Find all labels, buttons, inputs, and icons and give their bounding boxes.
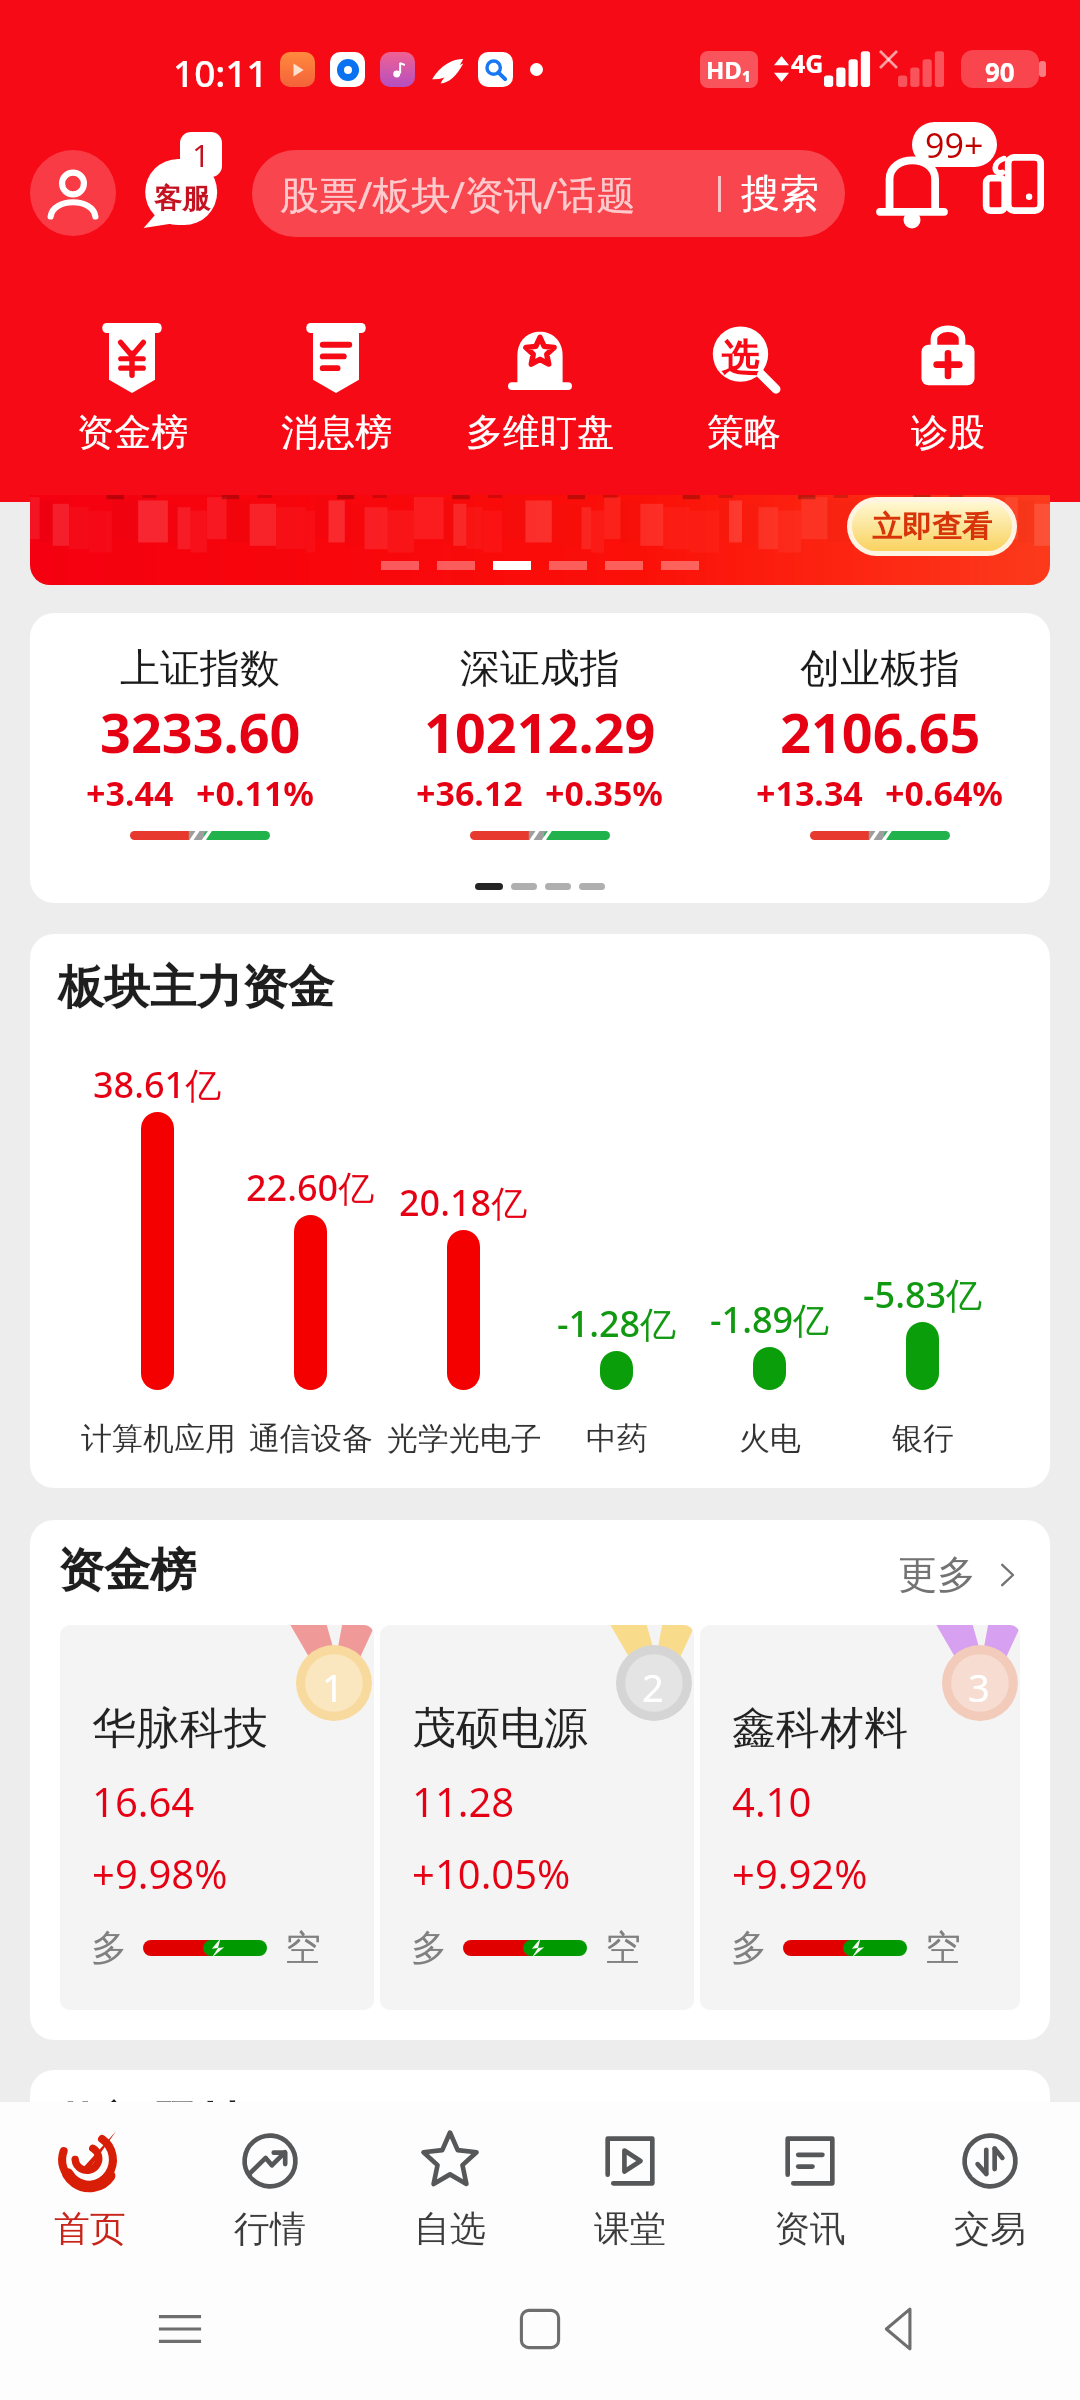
button[interactable]: 行情 [180, 2102, 360, 2257]
button[interactable]: 股票/板块/资讯/话题 [252, 150, 845, 237]
staticText: 空 [925, 1925, 961, 1970]
staticText: 光学光电子 [387, 1419, 540, 1458]
staticText: 客服 [154, 181, 210, 216]
button[interactable]: 选 [642, 319, 846, 456]
staticText: 鑫科材料 [732, 1701, 908, 1756]
staticText: 2106.65 [780, 695, 981, 769]
button[interactable]: 创业板指 [710, 643, 1050, 840]
button[interactable]: App layout [985, 155, 1043, 213]
staticText: 上证指数 [120, 643, 280, 693]
button[interactable]: 资讯 [720, 2102, 900, 2257]
button[interactable]: -1.28亿 [540, 1299, 693, 1390]
staticText: 策略 [707, 409, 781, 456]
button[interactable]: 20.18亿 [387, 1178, 540, 1390]
staticText: 11.28 [412, 1774, 515, 1828]
button[interactable]: 1 [60, 1625, 374, 2010]
staticText: 交易 [954, 2206, 1026, 2251]
staticText: -5.83亿 [863, 1270, 983, 1319]
button[interactable]: Notifications [878, 151, 946, 229]
button[interactable]: 2 [380, 1625, 694, 2010]
staticText: 22.60亿 [246, 1163, 375, 1212]
staticText: 搜索 [741, 169, 819, 218]
staticText: 深证成指 [460, 643, 620, 693]
button[interactable]: Profile [30, 150, 116, 236]
staticText: 3233.60 [100, 695, 301, 769]
staticText: 选 [721, 334, 759, 382]
staticText: +0.35% [545, 770, 664, 816]
staticText: 4.10 [732, 1774, 812, 1828]
button[interactable]: 3 [700, 1625, 1020, 2010]
staticText: 诊股 [911, 409, 985, 456]
staticText: 38.61亿 [93, 1060, 222, 1109]
staticText: 热门题材 [58, 2096, 242, 2154]
staticText: 4G [791, 46, 824, 80]
staticText: 股票/板块/资讯/话题 [280, 167, 636, 220]
staticText: +10.05% [412, 1846, 571, 1900]
button[interactable]: 资金榜 [30, 319, 234, 456]
staticText: 10212.29 [424, 695, 656, 769]
staticText: 行情 [234, 2206, 306, 2251]
button[interactable]: Recents [0, 2257, 360, 2400]
button[interactable]: 22.60亿 [234, 1163, 387, 1390]
staticText: 16.64 [92, 1774, 195, 1828]
button[interactable]: 交易 [900, 2102, 1080, 2257]
staticText: +0.11% [196, 770, 315, 816]
staticText: 资金榜 [77, 409, 188, 456]
staticText: 多 [91, 1925, 127, 1970]
staticText: 创业板指 [800, 643, 960, 693]
staticText: 茂硕电源 [412, 1701, 588, 1756]
button[interactable]: -5.83亿 [846, 1270, 999, 1390]
button[interactable]: 立即查看 [30, 495, 1050, 585]
staticText: 板块主力资金 [58, 959, 334, 1017]
button[interactable]: 消息榜 [234, 319, 438, 456]
button[interactable]: 多维盯盘 [438, 319, 642, 456]
button[interactable]: 更多 [878, 1544, 1022, 1599]
staticText: 计算机应用 [81, 1419, 234, 1458]
staticText: 10:11 [173, 47, 268, 97]
button[interactable]: Back [720, 2257, 1080, 2400]
button[interactable]: 诊股 [846, 319, 1050, 456]
staticText: 1 [322, 1661, 344, 1713]
button[interactable]: 首页 [0, 2102, 180, 2257]
staticText: +13.34 [756, 770, 863, 816]
staticText: +9.92% [732, 1846, 868, 1900]
staticText: 华脉科技 [92, 1701, 268, 1756]
staticText: 多 [731, 1925, 767, 1970]
staticText: +0.64% [885, 770, 1004, 816]
staticText: 火电 [739, 1419, 801, 1458]
staticText: +3.44 [86, 770, 174, 816]
staticText: +9.98% [92, 1846, 228, 1900]
staticText: 首页 [54, 2206, 126, 2251]
staticText: 消息榜 [281, 409, 392, 456]
button[interactable]: 立即查看 [852, 502, 1012, 551]
staticText: 空 [285, 1925, 321, 1970]
button[interactable]: 上证指数 [30, 643, 370, 840]
staticText: 资金榜 [58, 1542, 196, 1600]
button[interactable]: Home [360, 2257, 720, 2400]
staticText: 自选 [414, 2206, 486, 2251]
staticText: 空 [605, 1925, 641, 1970]
staticText: 更多 [898, 1550, 976, 1599]
staticText: +36.12 [416, 770, 523, 816]
staticText: 3 [968, 1661, 990, 1713]
staticText: 1 [192, 134, 210, 176]
staticText: -1.89亿 [710, 1295, 830, 1344]
staticText: 通信设备 [249, 1419, 373, 1458]
staticText: 银行 [892, 1419, 954, 1458]
staticText: 2 [642, 1661, 664, 1713]
staticText: 立即查看 [872, 508, 992, 546]
staticText: 资讯 [774, 2206, 846, 2251]
button[interactable]: Customer service [142, 132, 222, 228]
staticText: 20.18亿 [399, 1178, 528, 1227]
staticText: 多维盯盘 [466, 409, 614, 456]
staticText: -1.28亿 [557, 1299, 677, 1348]
button[interactable]: 深证成指 [370, 643, 710, 840]
staticText: HD₁ [706, 53, 752, 86]
staticText: 多 [411, 1925, 447, 1970]
staticText: 课堂 [594, 2206, 666, 2251]
button[interactable]: 自选 [360, 2102, 540, 2257]
staticText: 中药 [586, 1419, 648, 1458]
button[interactable]: 课堂 [540, 2102, 720, 2257]
button[interactable]: 38.61亿 [81, 1060, 234, 1390]
button[interactable]: -1.89亿 [693, 1295, 846, 1390]
